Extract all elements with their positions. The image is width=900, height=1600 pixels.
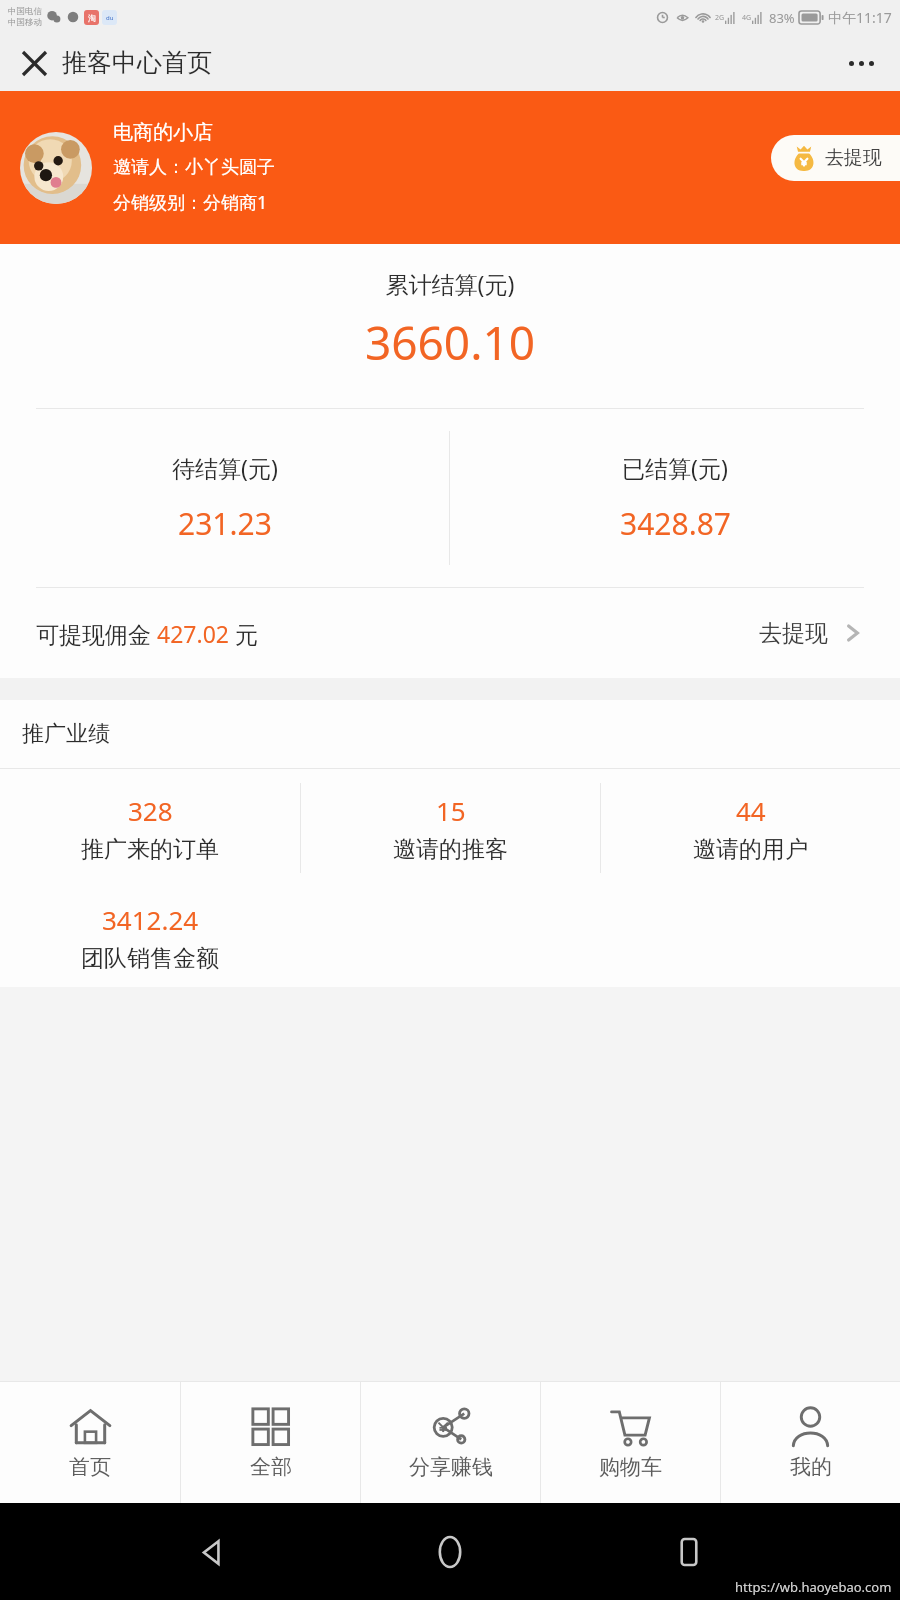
staticText: 我的 [790,1454,832,1480]
staticText: 累计结算(元) [0,268,900,299]
other: Shopping cart [609,1405,652,1448]
staticText: 已结算(元) [622,452,728,483]
staticText: 83% [769,9,795,27]
button[interactable]: All categories [181,1382,360,1503]
staticText: 分享赚钱 [409,1454,493,1480]
staticText: 邀请的用户 [693,835,808,864]
other: All categories [249,1405,292,1448]
staticText: 电商的小店 [113,120,213,145]
staticText: 去提现 [759,619,828,648]
staticText: 全部 [250,1454,292,1480]
button[interactable]: My account [721,1382,900,1503]
button[interactable]: 待结算(元) [0,409,449,587]
staticText: 可提现佣金 [36,618,157,649]
staticText: 分销级别：分销商1 [113,190,268,215]
button[interactable]: Recent apps [662,1525,716,1579]
staticText: 4G [742,13,752,23]
button[interactable]: 44 [601,769,900,887]
staticText: 购物车 [599,1454,662,1480]
staticText: 团队销售金额 [81,944,219,973]
button[interactable]: 可提现佣金 [0,588,900,678]
button[interactable]: 15 [301,769,600,887]
staticText: 中国电信 [8,6,42,17]
staticText: 淘 [88,13,96,23]
staticText: 元 [229,618,258,649]
button[interactable]: Close [14,43,54,83]
button[interactable]: Share and earn [361,1382,540,1503]
button[interactable]: Shopping cart [541,1382,720,1503]
button[interactable]: More options [838,40,884,86]
staticText: 邀请人：小丫头圆子 [113,156,275,179]
staticText: 中国移动 [8,17,42,28]
staticText: 邀请的推客 [393,835,508,864]
staticText: 2G [715,13,725,23]
staticText: 3660.10 [0,311,900,374]
other: My account [789,1405,832,1448]
staticText: 待结算(元) [172,452,278,483]
button[interactable]: Back [185,1525,239,1579]
staticText: du [106,14,114,22]
staticText: https://wb.haoyebao.com [735,1578,892,1596]
staticText: 231.23 [178,503,272,544]
other: Home [69,1405,112,1448]
other: Share and earn [429,1405,472,1448]
staticText: 427.02 [157,618,229,649]
staticText: 推广来的订单 [81,835,219,864]
staticText: 44 [736,793,766,828]
staticText: 推客中心首页 [62,47,212,78]
staticText: 去提现 [825,146,882,170]
staticText: 首页 [69,1454,111,1480]
staticText: 推广业绩 [22,720,110,748]
button[interactable]: Home [423,1525,477,1579]
button[interactable]: 328 [0,769,300,887]
button[interactable]: Home [0,1382,180,1503]
button[interactable]: 已结算(元) [450,409,900,587]
staticText: 3412.24 [102,902,199,937]
button[interactable]: 3412.24 [0,887,300,987]
staticText: 328 [128,793,173,828]
staticText: 3428.87 [620,503,731,544]
staticText: 中午11:17 [828,8,892,27]
staticText: 15 [436,793,466,828]
button[interactable]: 去提现 [771,135,900,181]
